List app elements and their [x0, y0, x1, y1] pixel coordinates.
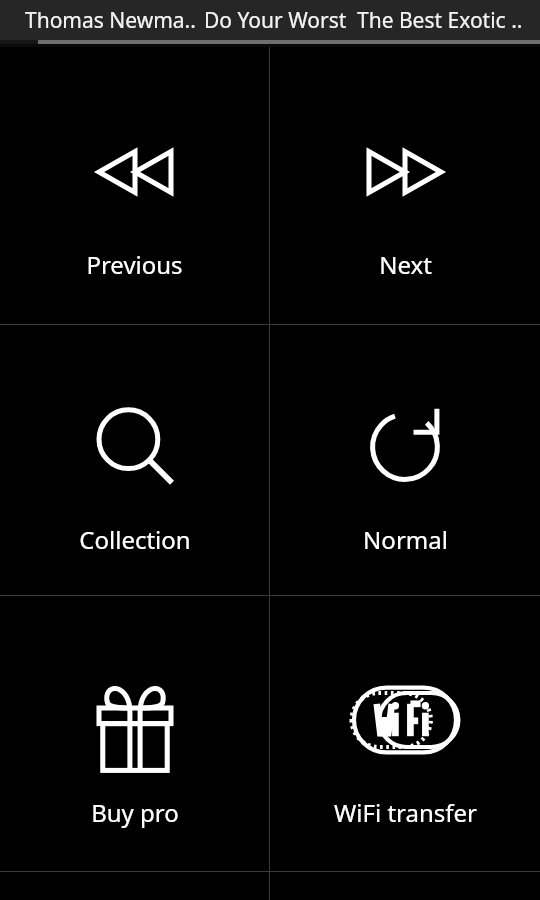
staticText: Next [379, 248, 432, 281]
staticText: WiFi transfer [334, 796, 477, 829]
button[interactable]: Normal [270, 325, 540, 595]
button[interactable]: WiFi transfer [270, 596, 540, 871]
staticText: Do Your Worst [204, 6, 347, 35]
button[interactable]: Collection [0, 325, 269, 595]
staticText: Collection [79, 523, 191, 556]
staticText: Previous [86, 248, 183, 281]
staticText: The Best Exotic .. [357, 6, 523, 35]
staticText: Buy pro [91, 796, 179, 829]
button[interactable]: Next [270, 47, 540, 324]
staticText: Normal [363, 523, 448, 556]
staticText: Thomas Newma.. [25, 6, 196, 35]
button[interactable]: Buy pro [0, 596, 269, 871]
button[interactable]: Previous [0, 47, 269, 324]
